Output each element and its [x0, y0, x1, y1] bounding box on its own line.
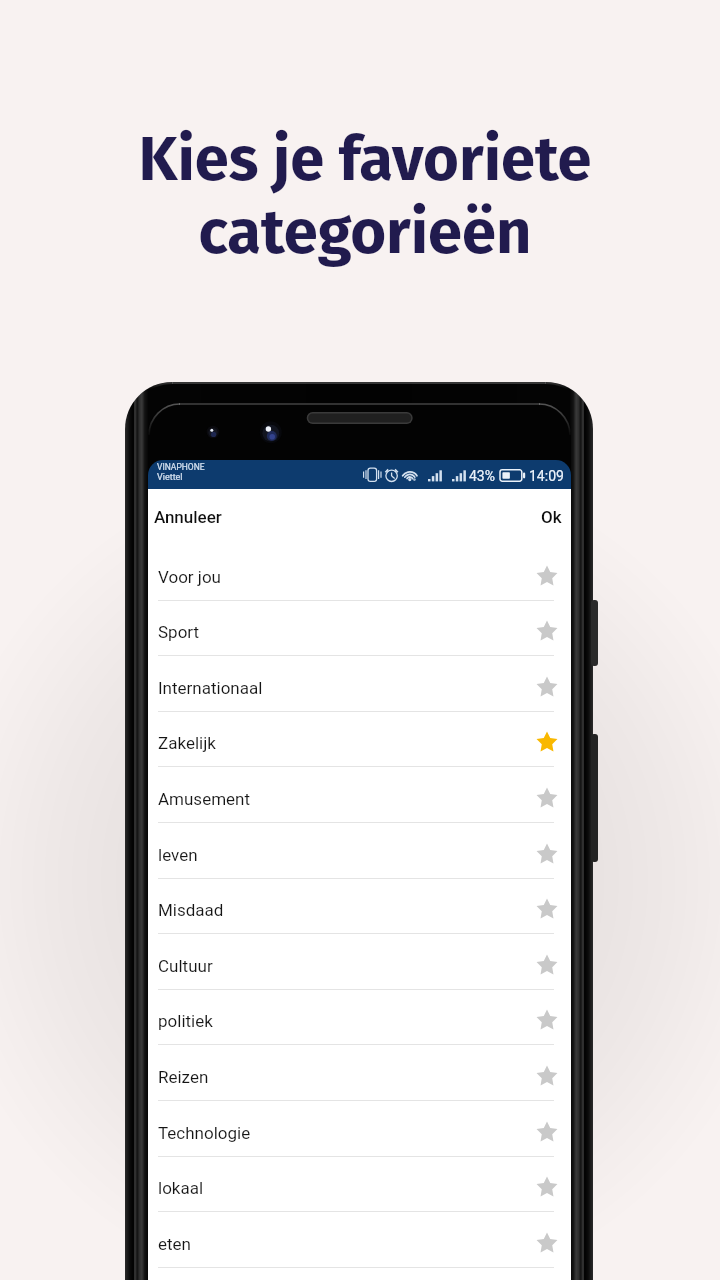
button[interactable]: Sport [148, 600, 571, 656]
staticText: Amusement [158, 789, 251, 809]
other: Favoriet Sport [536, 620, 558, 642]
button[interactable]: Technologie [148, 1101, 571, 1157]
other: Favoriet eten [536, 1232, 558, 1254]
other: Favoriet Amusement [536, 787, 558, 809]
staticText: Ok [541, 507, 562, 527]
staticText: Technologie [158, 1123, 251, 1143]
button[interactable]: Reizen [148, 1045, 571, 1101]
other: Favoriet Misdaad [536, 898, 558, 920]
other: Favoriet Technologie [536, 1121, 558, 1143]
staticText: Kies je favoriete categorieën [138, 122, 592, 269]
staticText: Annuleer [154, 507, 222, 527]
button[interactable]: wetenschap [148, 1267, 571, 1280]
staticText: Sport [158, 622, 200, 642]
button[interactable]: Annuleer [148, 499, 234, 535]
other: Favoriet lokaal [536, 1176, 558, 1198]
staticText: Cultuur [158, 956, 213, 976]
staticText: leven [158, 845, 198, 865]
button[interactable]: Ok [529, 499, 571, 535]
button[interactable]: leven [148, 823, 571, 879]
staticText: eten [158, 1234, 191, 1254]
staticText: Internationaal [158, 678, 263, 698]
staticText: Misdaad [158, 900, 224, 920]
button[interactable]: politiek [148, 989, 571, 1045]
button[interactable]: Voor jou [148, 545, 571, 601]
button[interactable]: Amusement [148, 767, 571, 823]
staticText: 43% [469, 468, 495, 484]
other: Favoriet Zakelijk [536, 731, 558, 753]
other: Favoriet Cultuur [536, 954, 558, 976]
staticText: Zakelijk [158, 733, 216, 753]
button[interactable]: eten [148, 1212, 571, 1268]
button[interactable]: Internationaal [148, 656, 571, 712]
staticText: Viettel [157, 472, 183, 483]
staticText: politiek [158, 1011, 213, 1031]
other: Favoriet Reizen [536, 1065, 558, 1087]
staticText: lokaal [158, 1178, 204, 1198]
button[interactable]: Cultuur [148, 934, 571, 990]
staticText: VINAPHONE [157, 462, 205, 472]
button[interactable]: lokaal [148, 1156, 571, 1212]
staticText: 14:09 [529, 468, 564, 484]
staticText: Reizen [158, 1067, 209, 1087]
other: Favoriet Voor jou [536, 565, 558, 587]
staticText: Voor jou [158, 567, 221, 587]
button[interactable]: Misdaad [148, 878, 571, 934]
other: Favoriet politiek [536, 1009, 558, 1031]
other: Favoriet leven [536, 843, 558, 865]
other: Favoriet Internationaal [536, 676, 558, 698]
button[interactable]: Zakelijk [148, 711, 571, 767]
